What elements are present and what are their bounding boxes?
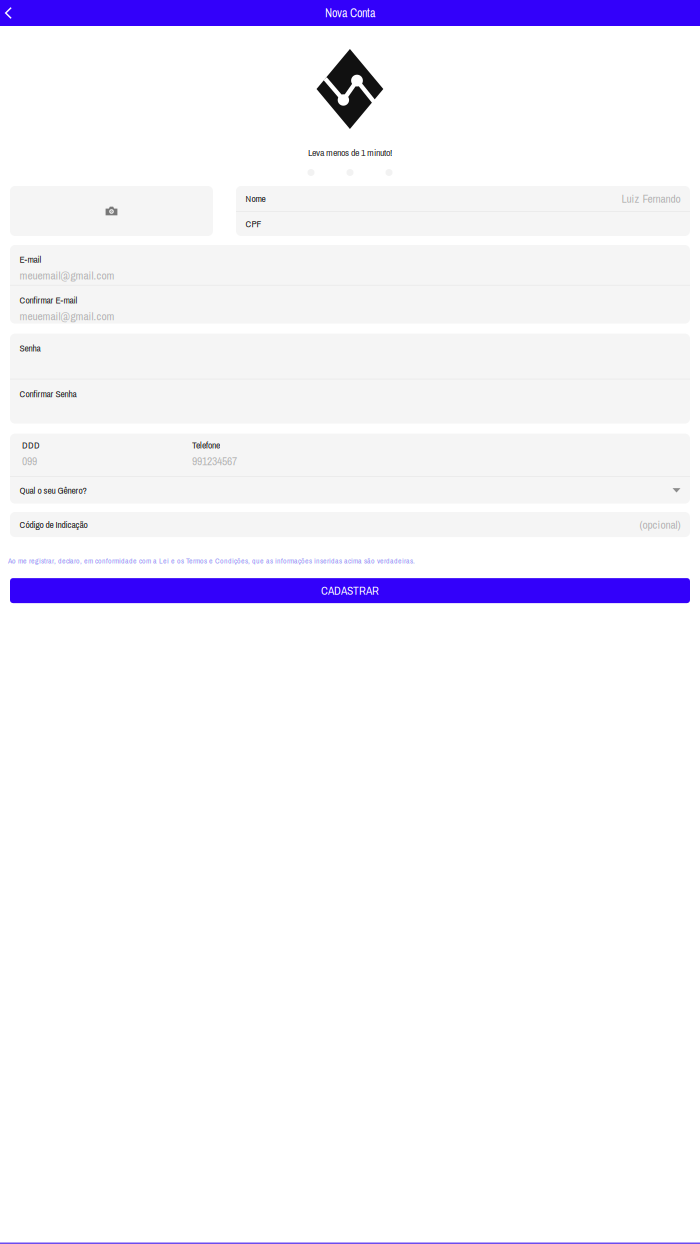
staticText: Leva menos de 1 minuto! [308,146,392,159]
staticText: (opcional) [639,517,680,532]
staticText: 099 [22,453,37,469]
button[interactable]: Ao me registrar, declaro, em conformidad… [8,555,415,566]
staticText: Nova Conta [325,5,375,21]
staticText: Senha [19,342,40,354]
staticText: Telefone [192,439,220,451]
staticText: meuemail@gmail.com [19,268,114,283]
staticText: Ao me registrar, declaro, em conformidad… [8,555,415,566]
staticText: DDD [22,439,40,451]
staticText: CPF [245,218,261,230]
staticText: Luiz Fernando [621,191,680,206]
staticText: Qual o seu Gênero? [19,484,86,497]
staticText: E-mail [19,253,41,266]
staticText: Confirmar Senha [19,387,76,400]
staticText: CADASTRAR [321,583,379,598]
staticText: meuemail@gmail.com [19,308,114,324]
button[interactable]: CADASTRAR [10,578,690,603]
button[interactable]: Add photo [10,186,213,236]
staticText: Nome [245,192,265,205]
staticText: Confirmar E-mail [19,294,77,306]
button[interactable]: Back [0,0,17,26]
staticText: 991234567 [192,453,237,469]
staticText: Código de Indicação [19,518,87,531]
